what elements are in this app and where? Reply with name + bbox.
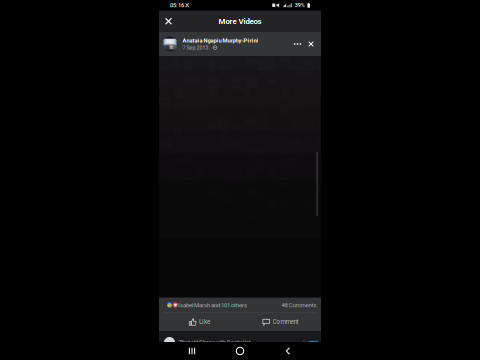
button[interactable]: Comment — [240, 313, 321, 331]
staticText: Comment — [273, 318, 299, 326]
staticText: 7 Sep 2013 · — [182, 44, 211, 51]
staticText: ♥ — [174, 303, 177, 307]
staticText: Like — [199, 318, 210, 326]
staticText: 05:16 — [170, 2, 184, 9]
staticText: 39% — [295, 2, 305, 8]
button[interactable]: Back — [273, 342, 303, 360]
button[interactable]: Recent apps — [177, 342, 207, 360]
staticText: That old Phone with Rachel lol — [179, 339, 250, 346]
button[interactable]: Hide post — [305, 33, 316, 55]
button[interactable]: More options — [290, 33, 304, 55]
staticText: Anataia Ngapiu Murphy-Pirini — [182, 37, 258, 44]
staticText: 48 Comments — [281, 302, 316, 309]
staticText: Isabel Marsh and 101 others — [178, 302, 247, 309]
button[interactable]: Close — [159, 10, 178, 32]
staticText: More Videos — [218, 17, 261, 26]
button[interactable]: Like — [159, 313, 240, 331]
button[interactable]: Home — [225, 342, 255, 360]
staticText: 1y — [302, 339, 307, 345]
staticText: 👍 — [167, 303, 172, 307]
